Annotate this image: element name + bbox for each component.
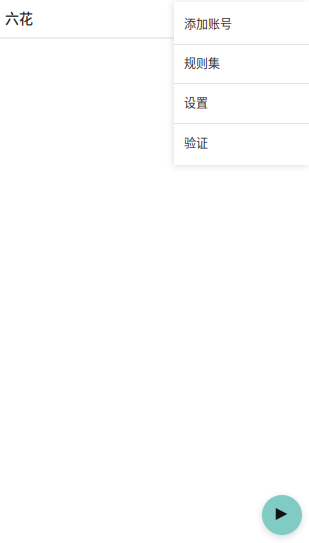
staticText: 验证	[184, 134, 208, 151]
staticText: 添加账号	[184, 15, 232, 32]
button[interactable]: 添加账号	[174, 5, 309, 45]
button[interactable]: 验证	[174, 124, 309, 163]
staticText: 六花	[5, 7, 33, 28]
button[interactable]: Start	[262, 495, 302, 535]
button[interactable]: 设置	[174, 84, 309, 124]
button[interactable]: 规则集	[174, 45, 309, 84]
staticText: 规则集	[184, 54, 220, 72]
staticText: 设置	[184, 94, 208, 111]
